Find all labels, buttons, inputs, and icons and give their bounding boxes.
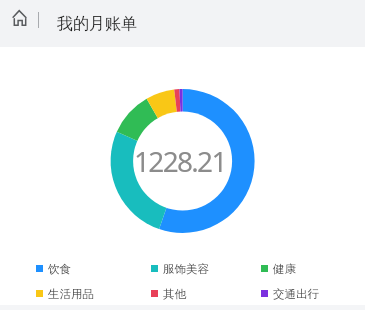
button[interactable]: 交通出行 <box>261 286 319 300</box>
staticText: 交通出行 <box>273 287 319 301</box>
button[interactable]: 健康 <box>261 261 296 275</box>
button[interactable] <box>8 6 32 30</box>
button[interactable]: 其他 <box>151 286 186 300</box>
staticText: 其他 <box>163 287 186 301</box>
staticText: 服饰美容 <box>163 262 209 276</box>
staticText: 健康 <box>273 262 296 276</box>
button[interactable]: 饮食 <box>36 261 71 275</box>
staticText: 我的月账单 <box>57 14 137 34</box>
button[interactable]: 生活用品 <box>36 286 94 300</box>
staticText: 生活用品 <box>48 287 94 301</box>
staticText: 1228.21 <box>134 142 226 180</box>
button[interactable]: 服饰美容 <box>151 261 209 275</box>
staticText: 饮食 <box>48 262 71 276</box>
